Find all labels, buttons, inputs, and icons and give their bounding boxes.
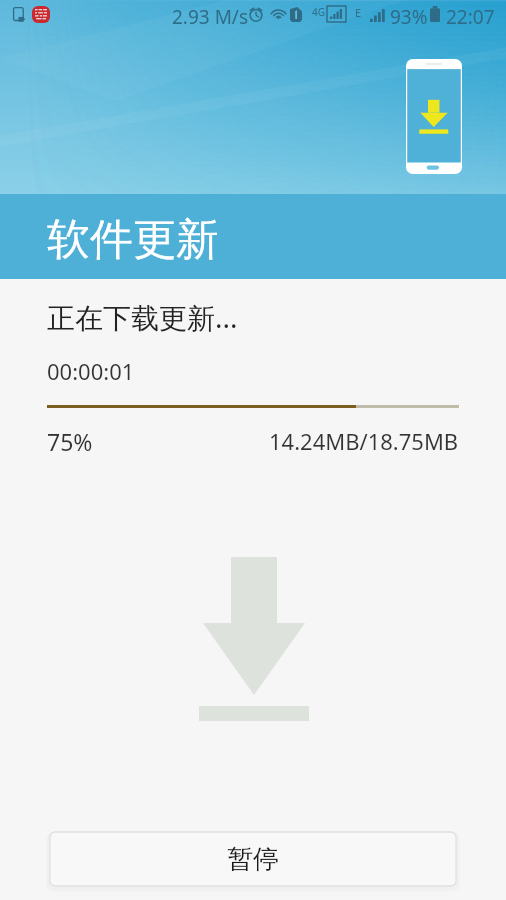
staticText: 4G (312, 5, 325, 19)
staticText: 2.93 M/s (172, 4, 249, 30)
staticText: 93% (390, 4, 428, 30)
staticText: 正在下载更新... (47, 298, 238, 336)
other: Screenshot notification (13, 7, 25, 22)
other: App notification (32, 6, 50, 23)
staticText: 软件更新 (47, 213, 219, 267)
staticText: 14.24MB/18.75MB (269, 426, 459, 456)
staticText: 暂停 (227, 843, 279, 876)
staticText: E (355, 5, 362, 20)
button[interactable]: 暂停 (48, 830, 458, 888)
staticText: 75% (47, 426, 93, 457)
staticText: 00:00:01 (47, 356, 135, 386)
staticText: 22:07 (446, 4, 495, 30)
other: Alarm set (249, 6, 263, 22)
